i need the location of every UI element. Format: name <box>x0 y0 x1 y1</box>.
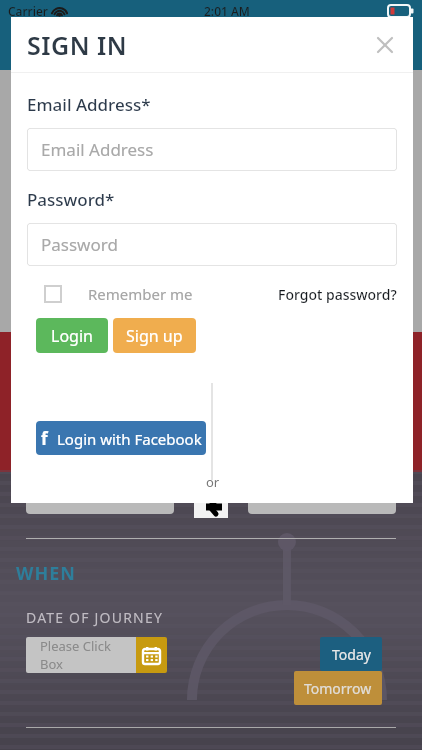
button[interactable]: Back <box>194 496 228 518</box>
staticText: Remember me <box>88 284 193 304</box>
staticText: Email Address* <box>27 93 151 116</box>
staticText: DATE OF JOURNEY <box>26 608 163 627</box>
staticText: Email Address <box>41 138 154 161</box>
button[interactable]: Forgot password? <box>278 285 397 304</box>
staticText: SIGN IN <box>27 28 128 62</box>
staticText: Please Click Box <box>40 637 136 673</box>
staticText: Login <box>51 325 93 347</box>
staticText: Tomorrow <box>304 679 372 698</box>
staticText: WHEN <box>16 561 76 586</box>
staticText: Password <box>41 233 118 256</box>
button[interactable]: Close <box>369 29 401 61</box>
staticText: Login with Facebook <box>57 429 202 449</box>
button[interactable]: Today <box>320 637 382 671</box>
button[interactable]: Email Address <box>27 128 397 171</box>
staticText: Password* <box>27 188 115 211</box>
staticText: Sign up <box>126 325 183 347</box>
staticText: f <box>41 427 48 450</box>
button[interactable]: Password <box>27 223 397 266</box>
staticText: 2:01 AM <box>204 3 250 19</box>
button[interactable]: Please Click Box <box>26 637 167 673</box>
staticText: Today <box>332 645 371 664</box>
button[interactable]: f <box>36 421 206 455</box>
staticText: Forgot password? <box>278 285 397 304</box>
button[interactable]: Remember me <box>27 284 193 304</box>
staticText: or <box>206 473 220 491</box>
button[interactable]: Tomorrow <box>294 671 382 705</box>
staticText: Carrier <box>8 3 48 19</box>
button[interactable]: Sign up <box>113 318 196 353</box>
button[interactable]: Login <box>36 318 108 353</box>
